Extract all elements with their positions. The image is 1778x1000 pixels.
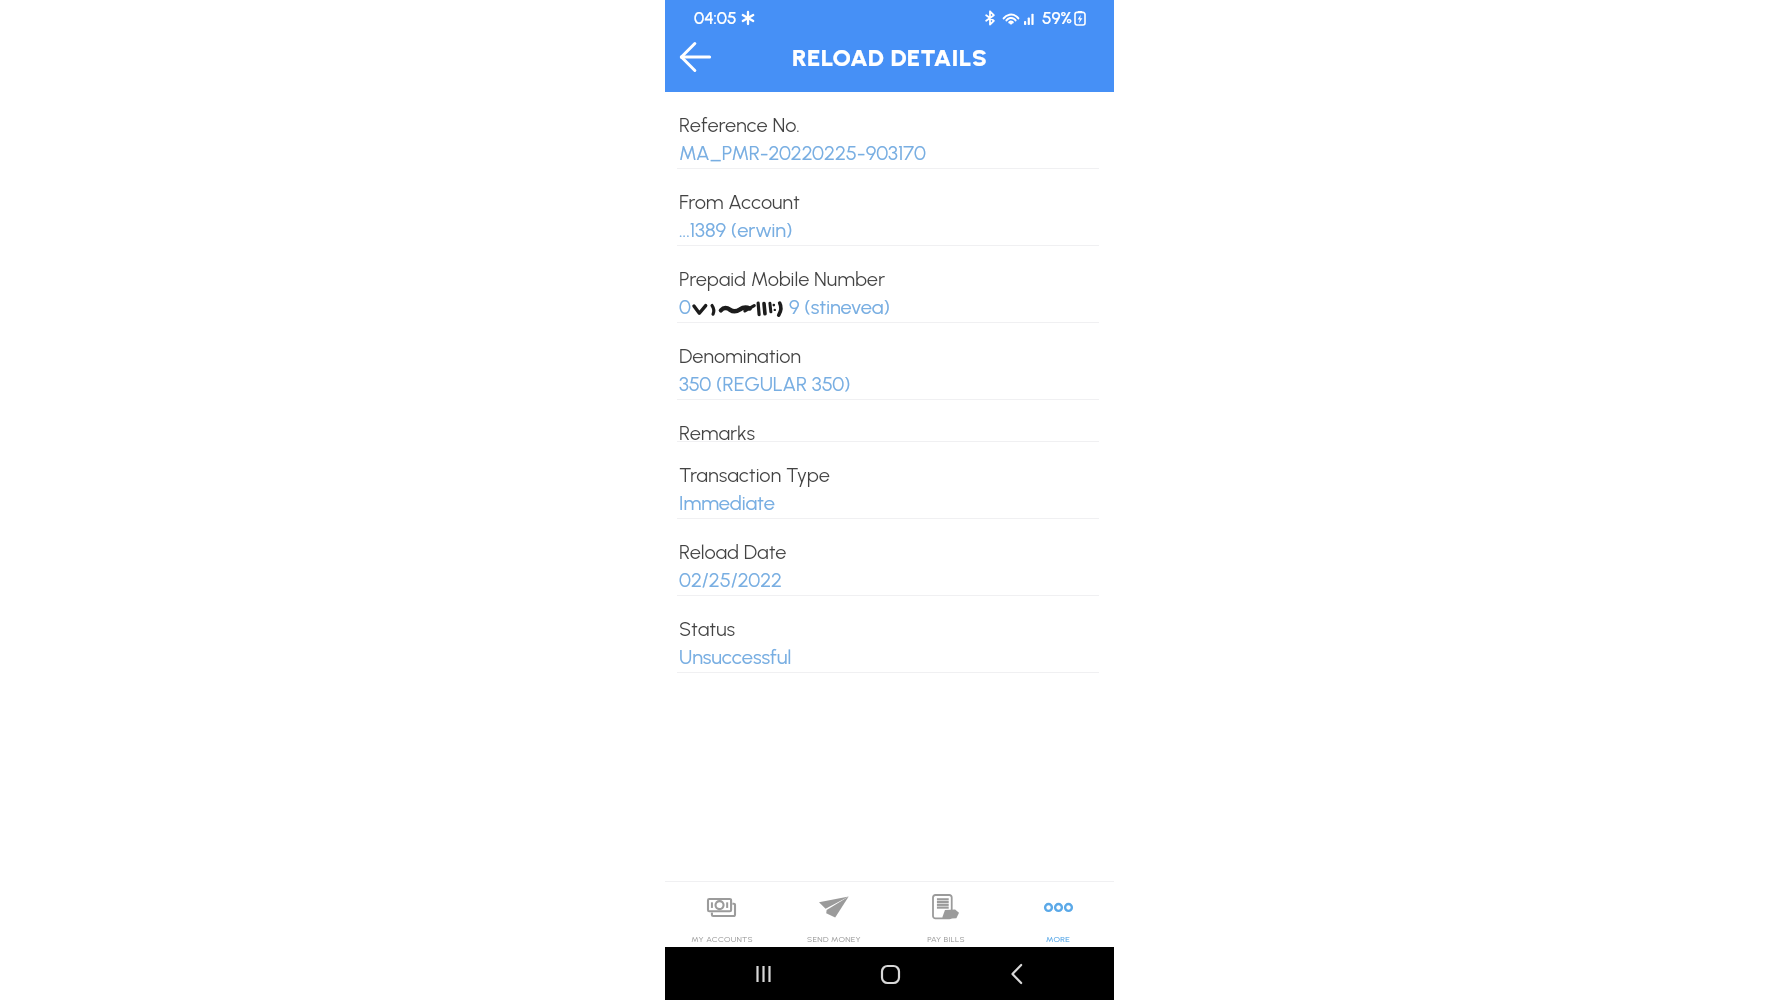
button[interactable]: SEND MONEY bbox=[778, 882, 890, 947]
button[interactable]: Remarks bbox=[677, 400, 1099, 442]
staticText: 59% bbox=[1042, 8, 1072, 28]
staticText: 0 bbox=[679, 295, 691, 319]
staticText: ...1389 (erwin) bbox=[679, 218, 793, 242]
staticText: 04:05 bbox=[694, 8, 737, 28]
button[interactable]: MORE bbox=[1002, 882, 1114, 947]
staticText: PAY BILLS bbox=[927, 934, 965, 944]
button[interactable]: From Account bbox=[677, 169, 1099, 246]
button[interactable]: Status bbox=[677, 596, 1099, 673]
staticText: 9 (stinevea) bbox=[789, 295, 890, 319]
staticText: 02/25/2022 bbox=[679, 568, 782, 592]
button[interactable]: Denomination bbox=[677, 323, 1099, 400]
button[interactable]: MY ACCOUNTS bbox=[665, 882, 778, 947]
staticText: RELOAD DETAILS bbox=[792, 43, 988, 72]
staticText: Reload Date bbox=[679, 540, 787, 564]
button[interactable]: Back bbox=[1002, 959, 1032, 989]
staticText: Status bbox=[679, 617, 736, 641]
button[interactable]: Reload Date bbox=[677, 519, 1099, 596]
button[interactable]: Home bbox=[875, 959, 905, 989]
staticText: Prepaid Mobile Number bbox=[679, 267, 886, 291]
staticText: Remarks bbox=[679, 421, 756, 445]
staticText: 350 (REGULAR 350) bbox=[679, 372, 851, 396]
button[interactable]: Back bbox=[677, 39, 713, 75]
staticText: SEND MONEY bbox=[807, 934, 861, 944]
staticText: MA_PMR-20220225-903170 bbox=[679, 141, 926, 165]
staticText: MORE bbox=[1046, 934, 1070, 944]
staticText: Reference No. bbox=[679, 113, 800, 137]
button[interactable]: Reference No. bbox=[677, 92, 1099, 169]
staticText: Immediate bbox=[679, 491, 775, 515]
staticText: Transaction Type bbox=[679, 463, 830, 487]
staticText: Denomination bbox=[679, 344, 802, 368]
staticText: From Account bbox=[679, 190, 800, 214]
button[interactable]: Recents bbox=[748, 959, 778, 989]
button[interactable]: PAY BILLS bbox=[890, 882, 1002, 947]
staticText: MY ACCOUNTS bbox=[691, 934, 753, 944]
button[interactable]: Transaction Type bbox=[677, 442, 1099, 519]
button[interactable]: Prepaid Mobile Number bbox=[677, 246, 1099, 323]
staticText: Unsuccessful bbox=[679, 645, 792, 669]
